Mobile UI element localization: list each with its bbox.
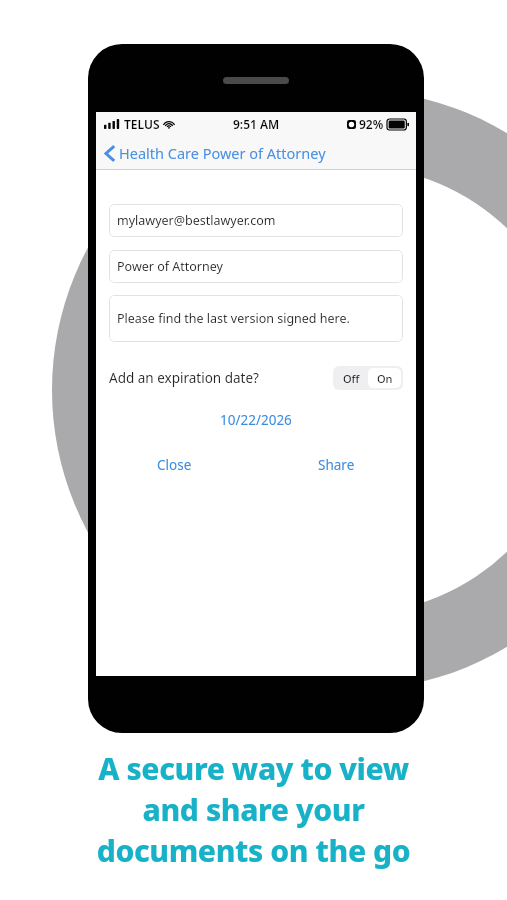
staticText: Please find the last version signed here… [117,310,350,327]
button[interactable]: Share [308,452,365,478]
staticText: Share [318,456,355,474]
button[interactable]: Close [147,452,202,478]
button[interactable]: On [368,368,401,388]
button[interactable]: Power of Attorney [109,250,403,283]
staticText: Power of Attorney [117,258,223,275]
button[interactable]: mylawyer@bestlawyer.com [109,204,403,237]
staticText: 10/22/2026 [220,411,292,429]
button[interactable]: 10/22/2026 [212,408,300,432]
staticText: 92% [359,116,384,132]
staticText: Close [157,456,192,474]
staticText: TELUS [124,116,160,132]
button[interactable]: Off [335,368,368,388]
staticText: 9:51 AM [233,116,280,132]
staticText: documents on the go [0,830,507,871]
button[interactable]: Back [96,136,336,170]
staticText: and share your [0,789,507,830]
staticText: Health Care Power of Attorney [119,143,326,163]
staticText: On [377,371,393,386]
staticText: A secure way to view [0,748,507,789]
staticText: Add an expiration date? [109,369,259,387]
staticText: mylawyer@bestlawyer.com [117,212,276,229]
staticText: Off [343,371,360,386]
button[interactable]: Please find the last version signed here… [109,295,403,342]
other: Back [105,145,115,162]
